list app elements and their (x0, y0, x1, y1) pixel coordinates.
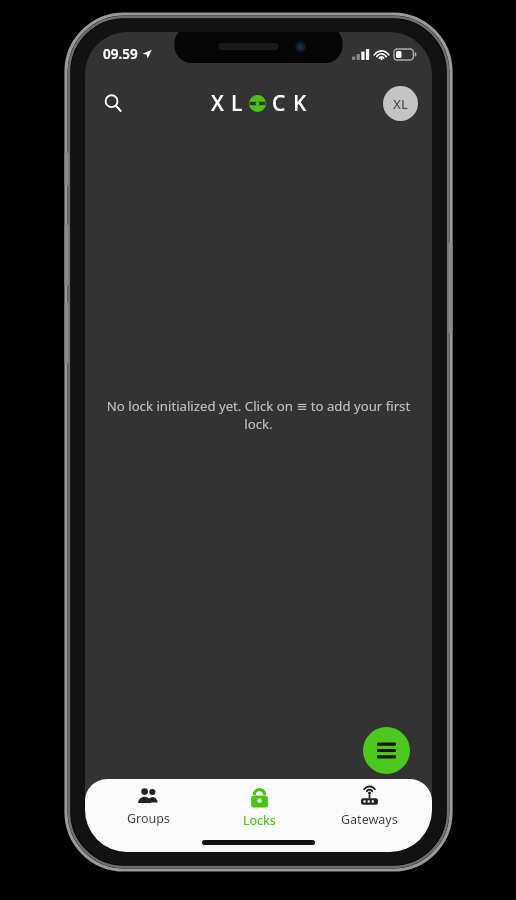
button[interactable]: Groups (100, 786, 196, 829)
button[interactable]: Gateways (321, 785, 417, 830)
button[interactable]: Search (93, 83, 133, 123)
staticText: XL (393, 95, 408, 113)
staticText: C (272, 89, 286, 118)
staticText: L (231, 89, 243, 118)
staticText: Locks (243, 812, 276, 829)
button[interactable]: Locks (211, 785, 307, 831)
button[interactable]: Profile XL (383, 86, 418, 121)
staticText: K (293, 89, 307, 118)
button[interactable]: Add lock menu (363, 727, 410, 774)
staticText: 09.59 (103, 45, 138, 63)
staticText: Groups (127, 810, 170, 827)
staticText: X (211, 89, 224, 118)
staticText: Gateways (341, 811, 398, 828)
staticText: No lock initialized yet. Click on ≡ to a… (95, 397, 422, 433)
